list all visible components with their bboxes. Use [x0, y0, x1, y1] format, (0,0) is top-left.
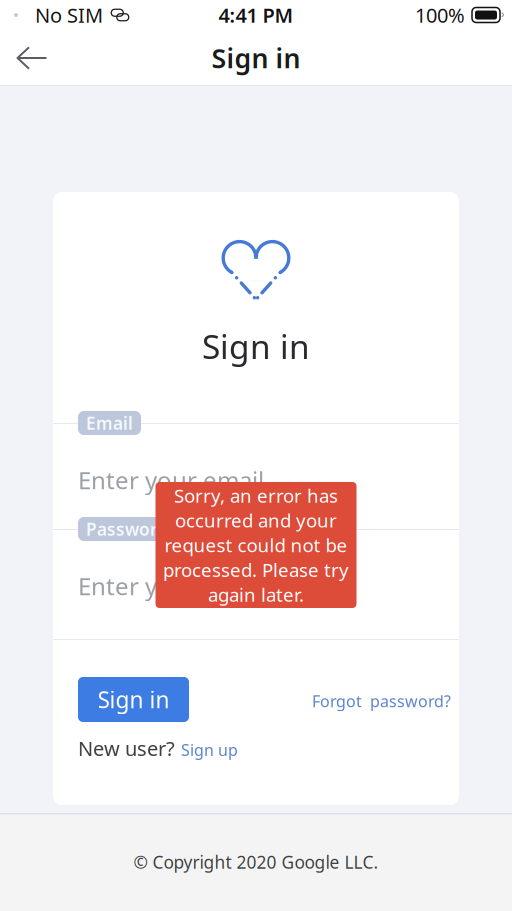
staticText: © Copyright 2020 Google LLC. — [133, 850, 378, 873]
staticText: Enter your email — [78, 464, 264, 496]
staticText: Sorry, an error has — [174, 483, 338, 508]
staticText: processed. Please try — [163, 557, 349, 582]
staticText: Enter your password — [78, 570, 311, 602]
staticText: No SIM — [35, 2, 103, 28]
staticText: Sign in — [202, 324, 310, 368]
staticText: 100% — [415, 2, 465, 28]
staticText: Email — [86, 411, 133, 434]
staticText: request could not be — [164, 533, 347, 557]
button[interactable]: Forgot password? — [312, 689, 452, 713]
staticText: Sign in — [97, 684, 169, 714]
staticText: occurred and your — [175, 508, 337, 533]
button[interactable]: Back — [0, 30, 64, 86]
button[interactable]: Sign in — [78, 677, 189, 722]
staticText: Sign in — [211, 40, 300, 76]
staticText: Forgot password? — [312, 690, 451, 712]
staticText: again later. — [208, 582, 304, 607]
button[interactable]: Sign up — [181, 739, 238, 760]
staticText: New user? — [78, 735, 175, 762]
staticText: Password — [86, 517, 168, 540]
staticText: Sign up — [181, 739, 238, 760]
staticText: 4:41 PM — [218, 2, 293, 28]
